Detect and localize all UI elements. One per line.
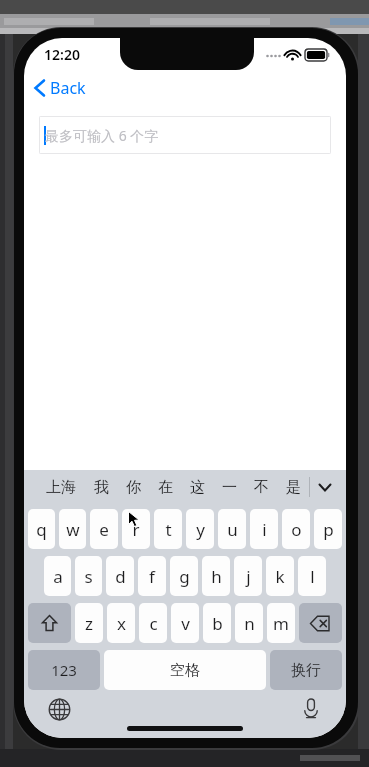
button[interactable]: Expand candidates [310,470,340,504]
button[interactable]: 空格 [104,650,266,690]
staticText: c [149,612,158,635]
button[interactable]: 不 [245,470,277,504]
button[interactable]: m [267,603,295,643]
button[interactable]: Dictation [294,692,328,726]
button[interactable]: 在 [149,470,181,504]
button[interactable]: o [282,509,310,549]
staticText: a [53,565,63,588]
button[interactable]: v [171,603,199,643]
button[interactable]: 一 [213,470,245,504]
staticText: 上海 [46,478,76,497]
button[interactable]: Shift [28,603,71,643]
button[interactable]: 123 [28,650,100,690]
button[interactable]: Backspace [299,603,342,643]
staticText: 123 [51,660,77,680]
staticText: g [179,565,190,588]
staticText: t [165,518,172,541]
staticText: r [132,518,140,541]
button[interactable]: j [234,556,262,596]
button[interactable]: k [266,556,294,596]
staticText: 一 [222,478,237,497]
staticText: 12:20 [44,45,80,64]
button[interactable]: 换行 [270,650,342,690]
button[interactable]: Switch keyboard language [42,692,76,726]
staticText: j [246,565,251,588]
staticText: 这 [190,478,205,497]
staticText: k [275,565,285,588]
staticText: 不 [254,478,269,497]
button[interactable]: x [107,603,135,643]
button[interactable]: p [314,509,342,549]
staticText: f [149,565,155,588]
staticText: l [310,565,315,588]
button[interactable]: g [170,556,198,596]
button[interactable]: s [75,556,102,596]
button[interactable]: c [139,603,167,643]
button[interactable]: r [122,509,150,549]
button[interactable]: 上海 [36,470,85,504]
button[interactable]: f [138,556,166,596]
button[interactable]: 这 [181,470,213,504]
staticText: u [227,518,238,541]
staticText: 我 [94,478,109,497]
button[interactable]: h [202,556,230,596]
staticText: 是 [286,478,301,497]
staticText: v [181,612,190,635]
button[interactable]: 是 [277,470,309,504]
staticText: e [99,518,109,541]
staticText: 你 [126,478,141,497]
staticText: o [291,518,302,541]
staticText: n [244,612,255,635]
button[interactable]: w [59,509,86,549]
staticText: z [85,612,93,635]
staticText: d [115,565,126,588]
staticText: s [84,565,93,588]
staticText: x [117,612,126,635]
button[interactable]: d [106,556,134,596]
staticText: 换行 [291,661,321,680]
button[interactable]: 我 [85,470,117,504]
button[interactable]: Back [28,74,92,102]
staticText: 在 [158,478,173,497]
staticText: y [196,518,205,541]
button[interactable]: q [28,509,55,549]
button[interactable]: 最多可输入 6 个字 [39,116,331,154]
button[interactable]: u [218,509,246,549]
staticText: q [36,518,47,541]
button[interactable]: y [186,509,214,549]
staticText: m [273,612,289,635]
staticText: Back [50,77,86,99]
staticText: i [262,518,267,541]
staticText: p [323,518,334,541]
button[interactable]: 你 [117,470,149,504]
button[interactable]: i [250,509,278,549]
staticText: 最多可输入 6 个字 [45,126,159,145]
staticText: b [212,612,223,635]
button[interactable]: z [75,603,103,643]
staticText: h [211,565,222,588]
button[interactable]: a [44,556,71,596]
button[interactable]: t [154,509,182,549]
staticText: 空格 [170,661,200,680]
button[interactable]: e [90,509,118,549]
button[interactable]: n [235,603,263,643]
button[interactable]: l [298,556,326,596]
staticText: w [66,518,80,541]
button[interactable]: b [203,603,231,643]
